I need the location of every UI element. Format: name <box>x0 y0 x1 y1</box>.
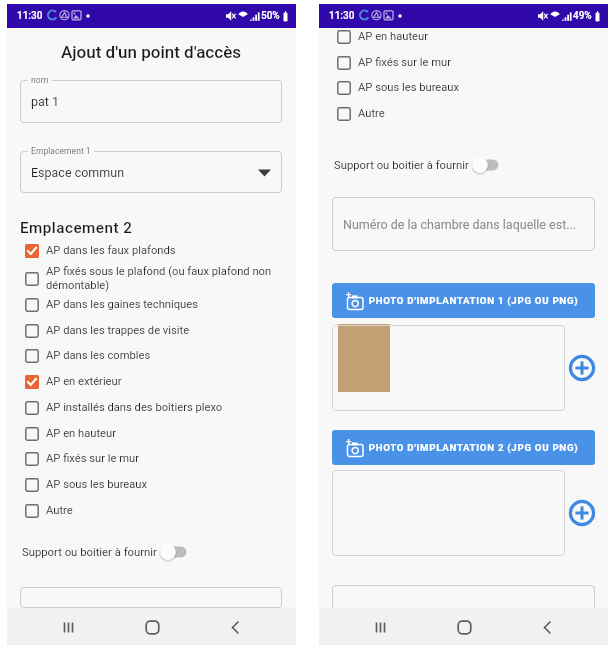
staticText: AP sous les bureaux <box>358 81 595 94</box>
button[interactable]: Recents <box>358 610 402 644</box>
staticText: pat 1 <box>31 94 271 109</box>
button[interactable]: Add photo <box>566 470 598 556</box>
staticText: AP fixés sur le mur <box>46 452 282 465</box>
staticText: Support ou boitier à fournir <box>334 159 469 172</box>
staticText: AP dans les faux plafonds <box>46 244 282 257</box>
button[interactable]: PHOTO D'IMPLANTATION 2 (JPG OU PNG) <box>332 430 595 465</box>
button[interactable]: AP sous les bureaux <box>20 472 282 497</box>
staticText: AP en hauteur <box>358 30 595 43</box>
staticText: AP fixés sur le mur <box>358 56 595 69</box>
staticText: 11:30 <box>329 10 355 22</box>
button[interactable]: AP en hauteur <box>20 421 282 446</box>
staticText: 49% <box>573 10 592 22</box>
staticText: AP fixés sous le plafond (ou faux plafon… <box>46 265 282 292</box>
button[interactable]: AP fixés sous le plafond (ou faux plafon… <box>20 264 282 293</box>
staticText: PHOTO D'IMPLANTATION 2 (JPG OU PNG) <box>365 442 582 453</box>
button[interactable]: Back <box>213 610 257 644</box>
staticText: 11:30 <box>17 10 43 22</box>
button[interactable]: Add photo <box>566 325 598 411</box>
staticText: nom <box>31 75 49 85</box>
staticText: Autre <box>358 107 595 120</box>
staticText: Support ou boitier à fournir <box>22 546 157 559</box>
staticText: PHOTO D'IMPLANTATION 1 (JPG OU PNG) <box>365 295 582 306</box>
button[interactable]: Back <box>525 610 569 644</box>
staticText: AP installés dans des boîtiers plexo <box>46 401 282 414</box>
button[interactable]: AP dans les combles <box>20 343 282 368</box>
button[interactable]: Recents <box>46 610 90 644</box>
staticText: AP en hauteur <box>46 427 282 440</box>
staticText: Espace commun <box>31 165 258 180</box>
button[interactable]: AP fixés sur le mur <box>20 446 282 471</box>
staticText: Ajout d'un point d'accès <box>20 42 282 62</box>
button[interactable]: Home <box>130 610 174 644</box>
button[interactable]: AP dans les trappes de visite <box>20 318 282 343</box>
staticText: AP sous les bureaux <box>46 478 282 491</box>
staticText: AP dans les combles <box>46 349 282 362</box>
button[interactable]: Home <box>442 610 486 644</box>
staticText: 50% <box>261 10 280 22</box>
button[interactable]: PHOTO D'IMPLANTATION 1 (JPG OU PNG) <box>332 283 595 318</box>
button[interactable]: Support ou boitier à fournir <box>471 154 505 176</box>
button[interactable]: AP en extérieur <box>20 369 282 394</box>
button[interactable]: AP en hauteur <box>332 24 595 49</box>
staticText: Numéro de la chambre dans laquelle est..… <box>343 217 584 232</box>
staticText: AP dans les trappes de visite <box>46 324 282 337</box>
button[interactable]: Support ou boitier à fournir <box>159 541 193 563</box>
staticText: AP en extérieur <box>46 375 282 388</box>
button[interactable]: Autre <box>332 101 595 126</box>
staticText: Emplacement 1 <box>31 146 91 156</box>
button[interactable]: AP dans les gaines techniques <box>20 292 282 317</box>
staticText: AP dans les gaines techniques <box>46 298 282 311</box>
button[interactable]: AP sous les bureaux <box>332 75 595 100</box>
button[interactable]: AP installés dans des boîtiers plexo <box>20 395 282 420</box>
staticText: Emplacement 2 <box>20 219 133 237</box>
button[interactable]: Autre <box>20 498 282 523</box>
staticText: Autre <box>46 504 282 517</box>
button[interactable]: AP dans les faux plafonds <box>20 238 282 263</box>
button[interactable]: AP fixés sur le mur <box>332 50 595 75</box>
